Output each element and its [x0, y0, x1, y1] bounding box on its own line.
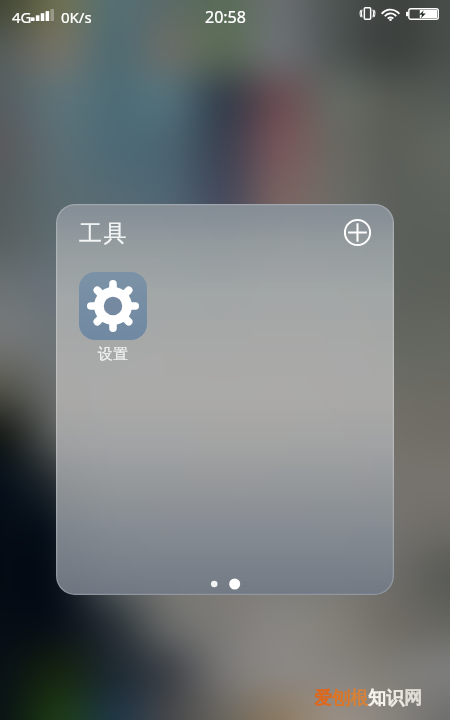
- button[interactable]: Add app to folder: [342, 217, 373, 248]
- staticText: 爱: [314, 687, 332, 710]
- staticText: 4G: [12, 7, 32, 27]
- button[interactable]: 设置: [63, 272, 163, 364]
- staticText: 设置: [98, 345, 128, 364]
- staticText: 刨: [332, 687, 350, 710]
- staticText: 20:58: [205, 6, 246, 28]
- staticText: 网: [404, 687, 422, 710]
- button[interactable]: 工具: [56, 204, 394, 595]
- staticText: 根: [350, 687, 368, 710]
- staticText: 0K/s: [61, 7, 92, 27]
- staticText: 识: [386, 687, 404, 710]
- staticText: 知: [368, 687, 386, 710]
- staticText: 工具: [79, 219, 128, 248]
